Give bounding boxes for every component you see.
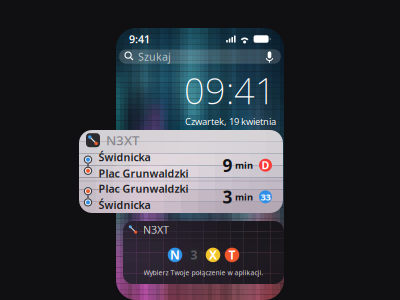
staticText: Czwartek, 19 kwietnia (185, 115, 276, 128)
staticText: min (235, 159, 253, 171)
staticText: 9:41 (129, 32, 150, 46)
staticText: Plac Grunwaldzki (98, 182, 188, 196)
button[interactable]: 3 (187, 248, 201, 262)
staticText: D (261, 158, 269, 172)
button[interactable]: Plac Grunwaldzki (79, 181, 283, 212)
button[interactable]: X (206, 248, 220, 262)
staticText: Plac Grunwaldzki (98, 166, 188, 180)
staticText: X (209, 247, 217, 263)
staticText: N (170, 247, 180, 263)
staticText: Świdnicka (98, 150, 150, 164)
staticText: Szukaj (138, 49, 171, 64)
staticText: 3 (222, 185, 232, 208)
button[interactable]: N (168, 248, 182, 262)
staticText: Świdnicka (98, 198, 150, 212)
staticText: T (228, 247, 235, 263)
button[interactable]: Szukaj (119, 49, 281, 64)
staticText: 3 (190, 247, 197, 263)
staticText: min (235, 191, 253, 203)
staticText: Wybierz Twoje połączenie w aplikacji. (143, 268, 263, 277)
staticText: 09:41 (184, 66, 276, 114)
button[interactable]: Świdnicka (79, 150, 283, 181)
staticText: N3XT (106, 131, 139, 149)
button[interactable]: T (225, 248, 239, 262)
staticText: 9 (222, 154, 232, 177)
staticText: N3XT (143, 222, 169, 237)
staticText: 33 (260, 191, 270, 203)
